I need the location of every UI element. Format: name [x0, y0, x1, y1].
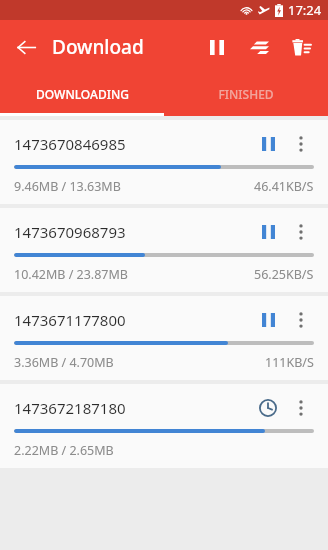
staticText: 2.22MB / 2.65MB [14, 442, 114, 459]
staticText: 56.25KB/S [254, 266, 314, 283]
staticText: 1473671177800 [14, 310, 126, 330]
staticText: 10.42MB / 23.87MB [14, 266, 128, 283]
staticText: 3.36MB / 4.70MB [14, 354, 114, 371]
button[interactable]: FINISHED [164, 74, 328, 113]
button[interactable]: 1473670968793 [0, 208, 328, 292]
staticText: 1473672187180 [14, 398, 126, 418]
button[interactable]: Back [6, 27, 46, 67]
staticText: 9.46MB / 13.63MB [14, 178, 121, 195]
staticText: 111KB/S [265, 354, 314, 371]
button[interactable]: Pause [254, 306, 282, 334]
button[interactable]: Pause all [196, 26, 238, 68]
staticText: 17:24 [288, 1, 322, 19]
staticText: DOWNLOADING [36, 86, 129, 102]
button[interactable]: DOWNLOADING [0, 74, 164, 113]
staticText: Download [52, 34, 144, 60]
staticText: FINISHED [218, 86, 274, 102]
button[interactable]: 1473672187180 [0, 384, 328, 468]
staticText: 1473670846985 [14, 134, 126, 154]
button[interactable]: More options [288, 131, 314, 157]
button[interactable]: More options [288, 219, 314, 245]
button[interactable]: More options [288, 307, 314, 333]
button[interactable]: 1473670846985 [0, 120, 328, 204]
button[interactable]: Pause [254, 130, 282, 158]
button[interactable]: More options [288, 395, 314, 421]
button[interactable]: Delete [280, 26, 322, 68]
staticText: 1473670968793 [14, 222, 126, 242]
button[interactable]: Pending [254, 394, 282, 422]
staticText: 46.41KB/S [254, 178, 314, 195]
button[interactable]: Sort [238, 26, 280, 68]
button[interactable]: Pause [254, 218, 282, 246]
button[interactable]: 1473671177800 [0, 296, 328, 380]
